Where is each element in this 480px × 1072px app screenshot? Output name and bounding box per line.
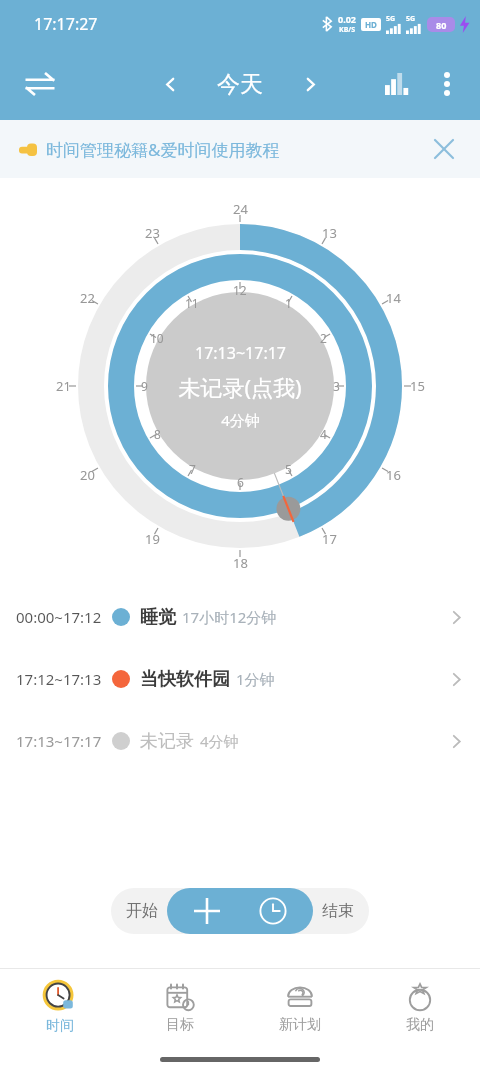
staticText: 17	[322, 530, 337, 548]
button[interactable]: 开始	[111, 888, 173, 934]
staticText: 当快软件园	[140, 668, 230, 691]
staticText: 5G	[406, 14, 416, 24]
button[interactable]: 结束	[307, 888, 369, 934]
staticText: 21	[56, 377, 71, 395]
staticText: 22	[80, 289, 95, 307]
button[interactable]: Switch view	[14, 58, 66, 110]
staticText: 17:17:27	[34, 13, 98, 35]
staticText: 8	[154, 426, 161, 442]
staticText: 19	[145, 530, 160, 548]
staticText: 6	[237, 474, 244, 490]
staticText: 9	[141, 378, 148, 394]
button[interactable]: 新计划	[240, 969, 360, 1047]
staticText: 15	[410, 377, 425, 395]
button[interactable]: 17:13~17:17	[146, 292, 334, 480]
button[interactable]: 17:12~17:13	[0, 648, 480, 710]
staticText: 00:00~17:12	[16, 607, 102, 627]
button[interactable]: Close banner	[422, 127, 466, 171]
staticText: 7	[189, 461, 196, 477]
staticText: 24	[233, 200, 248, 218]
staticText: 13	[322, 224, 337, 242]
button[interactable]: 时间管理秘籍&爱时间使用教程	[0, 120, 480, 178]
button[interactable]: 00:00~17:12	[0, 586, 480, 648]
staticText: 18	[233, 554, 248, 572]
staticText: 开始	[126, 901, 158, 921]
button[interactable]: Next day	[288, 62, 332, 106]
staticText: KB/S	[339, 25, 356, 35]
button[interactable]: 我的	[360, 969, 480, 1047]
staticText: 4分钟	[221, 410, 260, 430]
staticText: 结束	[322, 901, 354, 921]
staticText: 17:13~17:17	[195, 342, 286, 364]
button[interactable]: Statistics	[372, 59, 422, 109]
staticText: 17:13~17:17	[16, 731, 102, 751]
button[interactable]: 17:13~17:17	[0, 710, 480, 772]
staticText: 17小时12分钟	[182, 607, 277, 627]
staticText: 5G	[386, 14, 396, 24]
staticText: 时间管理秘籍&爱时间使用教程	[46, 138, 280, 161]
button[interactable]: 今天	[192, 70, 288, 99]
staticText: 睡觉	[140, 606, 176, 629]
staticText: 3	[333, 378, 340, 394]
staticText: 4	[320, 426, 327, 442]
staticText: 2	[320, 330, 327, 346]
staticText: 未记录(点我)	[178, 372, 302, 402]
staticText: 4分钟	[200, 731, 239, 751]
staticText: 5	[285, 461, 292, 477]
staticText: 今天	[217, 70, 263, 99]
staticText: 未记录	[140, 730, 194, 753]
staticText: 时间	[46, 1017, 74, 1035]
staticText: 80	[436, 19, 447, 31]
staticText: 新计划	[279, 1016, 321, 1034]
staticText: 17:12~17:13	[16, 669, 102, 689]
staticText: 23	[145, 224, 160, 242]
button[interactable]: More options	[422, 59, 472, 109]
staticText: 我的	[406, 1016, 434, 1034]
staticText: 11	[185, 295, 199, 311]
button[interactable]: 时间	[0, 969, 120, 1047]
staticText: 1分钟	[236, 669, 275, 689]
staticText: 20	[80, 466, 95, 484]
staticText: 16	[386, 466, 401, 484]
button[interactable]: Add record	[182, 888, 232, 934]
staticText: 10	[150, 330, 164, 346]
button[interactable]: Timer	[248, 888, 298, 934]
staticText: 12	[233, 282, 247, 298]
staticText: 14	[386, 289, 401, 307]
button[interactable]: Previous day	[148, 62, 192, 106]
staticText: 目标	[166, 1016, 194, 1034]
staticText: HD	[365, 19, 377, 30]
staticText: 1	[285, 295, 292, 311]
staticText: 0.02	[338, 13, 356, 25]
button[interactable]: 目标	[120, 969, 240, 1047]
